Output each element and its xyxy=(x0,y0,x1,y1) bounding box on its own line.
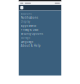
button[interactable]: Display xyxy=(19,20,61,24)
staticText: Display xyxy=(21,20,30,23)
staticText: Account xyxy=(21,12,32,15)
button[interactable]: Security Options xyxy=(19,32,61,36)
button[interactable]: About & Help xyxy=(19,44,61,48)
button[interactable]: Notifications xyxy=(19,16,61,20)
staticText: About & Help xyxy=(21,44,41,47)
button[interactable]: Privacy & Data xyxy=(19,28,61,32)
staticText: Security Options xyxy=(21,32,43,35)
button[interactable]: Home xyxy=(20,6,23,9)
staticText: Appearance xyxy=(21,24,37,27)
button[interactable]: Account xyxy=(19,12,61,16)
staticText: Privacy & Data xyxy=(21,28,38,31)
button[interactable]: Language xyxy=(19,40,61,44)
staticText: Language xyxy=(21,40,34,43)
button[interactable]: Storage xyxy=(19,36,61,40)
staticText: Storage xyxy=(21,36,31,39)
staticText: Notifications xyxy=(21,16,38,19)
button[interactable]: Appearance xyxy=(19,24,61,28)
